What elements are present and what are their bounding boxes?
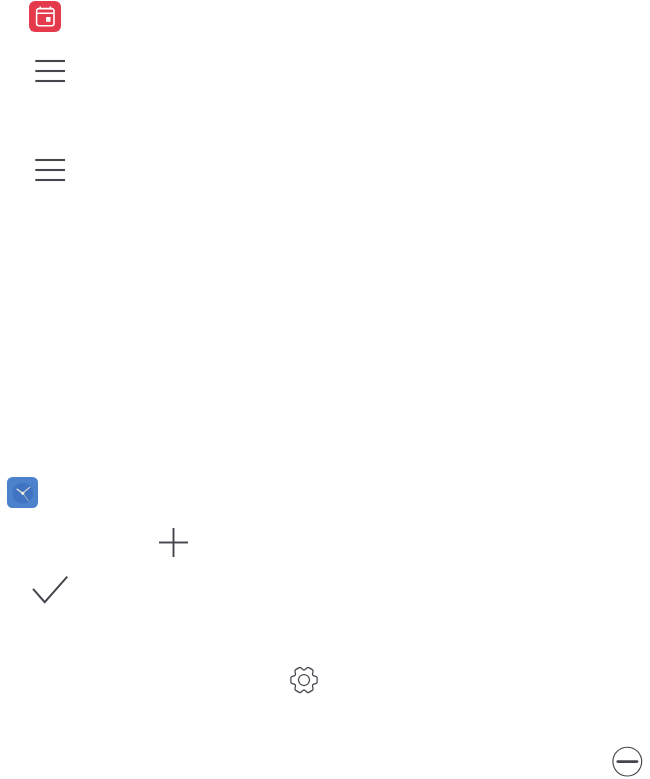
button[interactable]: Calendar [29, 1, 61, 32]
button[interactable]: Settings [290, 666, 318, 694]
button[interactable]: Done [31, 573, 69, 605]
button[interactable]: Menu [35, 59, 66, 83]
button[interactable]: Add [158, 527, 189, 558]
button[interactable]: Menu [35, 158, 66, 182]
button[interactable]: Remove [612, 746, 642, 776]
button[interactable]: Clock [7, 477, 38, 508]
